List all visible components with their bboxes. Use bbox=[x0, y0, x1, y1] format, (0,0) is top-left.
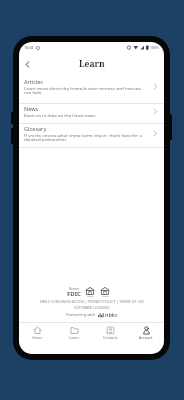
button[interactable]: News bbox=[19, 104, 164, 123]
staticText: Learn more about the home-buying process… bbox=[24, 86, 141, 90]
button[interactable]: Account bbox=[128, 326, 164, 339]
button[interactable]: Articles bbox=[19, 75, 164, 103]
staticText: Learn bbox=[79, 58, 105, 70]
staticText: 100% bbox=[150, 45, 159, 50]
staticText: Keep up to date on the latest news. bbox=[24, 113, 97, 117]
staticText: Contacts bbox=[103, 335, 118, 339]
staticText: detailed explanation. bbox=[24, 137, 68, 141]
button[interactable]: Glossary bbox=[19, 124, 164, 147]
staticText: 10:41 bbox=[24, 45, 34, 50]
staticText: Articles bbox=[24, 78, 43, 85]
staticText: Home bbox=[32, 335, 43, 339]
staticText: Glossary bbox=[24, 125, 47, 132]
staticText: LENDER bbox=[102, 295, 109, 297]
staticText: News bbox=[24, 105, 39, 112]
staticText: Loans bbox=[69, 335, 80, 339]
staticText: FDIC bbox=[67, 290, 81, 297]
button[interactable]: Contacts bbox=[92, 326, 128, 339]
staticText: NMLS CONSUMER ACCESS | PRIVACY POLICY | … bbox=[40, 299, 144, 304]
staticText: LENDER bbox=[87, 295, 94, 297]
staticText: Partnering with bbox=[66, 312, 96, 317]
staticText: nbkc bbox=[105, 311, 118, 318]
button[interactable]: Home bbox=[19, 326, 56, 339]
button[interactable]: Loans bbox=[56, 326, 92, 339]
staticText: Member bbox=[69, 287, 80, 290]
staticText: can help. bbox=[24, 90, 43, 94]
staticText: SOFTWARE LICENSES bbox=[74, 305, 110, 310]
staticText: Account bbox=[139, 335, 153, 339]
staticText: If you're unsure what some terms mean, c… bbox=[24, 133, 142, 137]
button[interactable] bbox=[22, 59, 32, 69]
